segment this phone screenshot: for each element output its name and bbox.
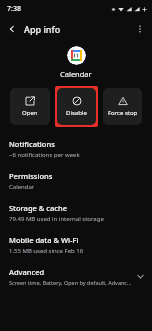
staticText: 7:38: [7, 4, 21, 14]
staticText: Permissions: [9, 171, 53, 181]
button[interactable]: Notifications: [0, 133, 152, 165]
staticText: Notifications: [9, 139, 55, 149]
staticText: 1.55 MB used since Feb 16: [9, 247, 84, 255]
staticText: Calendar: [60, 69, 92, 79]
button[interactable]: Permissions: [0, 165, 152, 197]
staticText: Force stop: [108, 109, 138, 117]
staticText: 79.49 MB used in internal storage: [9, 215, 104, 223]
staticText: Open: [22, 109, 38, 117]
button[interactable]: Advanced: [0, 261, 152, 292]
staticText: App info: [24, 23, 61, 35]
staticText: ~6 notifications per week: [9, 151, 80, 159]
staticText: Storage & cache: [9, 203, 67, 213]
staticText: Advanced: [9, 267, 45, 277]
button[interactable]: Open: [10, 88, 50, 125]
staticText: Disable: [66, 109, 87, 117]
button[interactable]: Storage & cache: [0, 197, 152, 229]
button[interactable]: Disable: [57, 88, 96, 125]
button[interactable]: Back: [3, 20, 21, 38]
staticText: Mobile data & Wi-Fi: [9, 235, 79, 245]
staticText: Calendar: [9, 183, 35, 191]
staticText: Screen time, Battery, Open by default, A…: [9, 279, 132, 286]
button[interactable]: Mobile data & Wi-Fi: [0, 229, 152, 261]
button[interactable]: More options: [131, 20, 149, 38]
button[interactable]: Force stop: [103, 88, 142, 125]
